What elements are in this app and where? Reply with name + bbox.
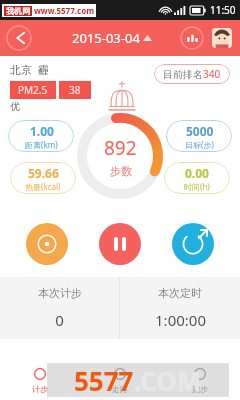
staticText: 340 bbox=[203, 67, 221, 81]
staticText: 1:00:00 bbox=[155, 310, 206, 330]
staticText: 距离(km) bbox=[25, 139, 58, 150]
staticText: 优 bbox=[10, 100, 20, 113]
button[interactable]: 目前排名 bbox=[154, 64, 230, 84]
staticText: 北京 霾 bbox=[10, 62, 49, 77]
staticText: 11:50 bbox=[210, 3, 236, 17]
button[interactable]: 本次计步 bbox=[0, 277, 119, 339]
staticText: 1.00 bbox=[30, 123, 54, 139]
staticText: 38 bbox=[69, 83, 81, 97]
staticText: www.5577.com bbox=[34, 5, 94, 16]
button[interactable]: 1.00 bbox=[8, 120, 74, 152]
button[interactable]: 走路 bbox=[80, 360, 160, 400]
staticText: 5000 bbox=[186, 123, 214, 139]
staticText: 时间(h) bbox=[184, 181, 210, 192]
staticText: 本次定时 bbox=[158, 286, 202, 300]
button[interactable]: Back bbox=[6, 25, 32, 51]
button[interactable]: 5000 bbox=[166, 120, 232, 152]
staticText: 0.00 bbox=[185, 165, 209, 181]
staticText: 2015-03-04 bbox=[72, 29, 140, 47]
staticText: 目前排名 bbox=[163, 68, 203, 81]
staticText: 本次计步 bbox=[38, 286, 82, 300]
button[interactable]: 本次定时 bbox=[120, 277, 240, 339]
staticText: PM2.5 bbox=[18, 83, 48, 97]
staticText: 热量(kcal) bbox=[25, 181, 61, 192]
button[interactable]: 跑步 bbox=[160, 360, 240, 400]
staticText: 5577 bbox=[74, 363, 134, 397]
button[interactable]: 0.00 bbox=[164, 162, 230, 194]
staticText: 步数 bbox=[110, 164, 132, 178]
button[interactable]: 59.66 bbox=[10, 162, 76, 194]
staticText: 目标(步) bbox=[185, 139, 214, 150]
staticText: 0 bbox=[55, 310, 64, 330]
button[interactable]: Start bbox=[26, 223, 68, 265]
staticText: 我机网 bbox=[6, 6, 30, 16]
button[interactable]: Share bbox=[172, 223, 214, 265]
button[interactable]: 892 bbox=[77, 113, 163, 199]
button[interactable]: Crown badge bbox=[105, 80, 139, 114]
button[interactable]: Profile bbox=[212, 28, 232, 48]
staticText: .COM bbox=[134, 363, 202, 397]
staticText: 892 bbox=[104, 135, 137, 161]
staticText: 59.66 bbox=[28, 165, 59, 181]
staticText: 计步 bbox=[32, 384, 48, 394]
button[interactable]: 2015-03-04 bbox=[72, 29, 152, 47]
button[interactable]: 计步 bbox=[0, 360, 80, 400]
staticText: 跑步 bbox=[192, 384, 208, 394]
button[interactable]: Statistics bbox=[180, 26, 204, 50]
staticText: 走路 bbox=[112, 384, 128, 394]
button[interactable]: Pause bbox=[99, 223, 141, 265]
